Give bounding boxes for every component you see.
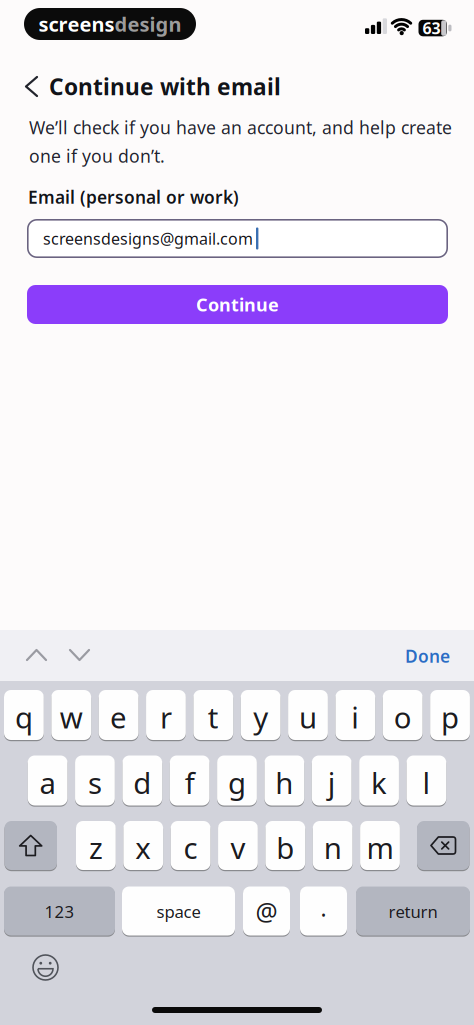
staticText: d bbox=[133, 762, 151, 802]
button[interactable]: s bbox=[75, 755, 115, 807]
button[interactable]: Next field bbox=[70, 650, 89, 660]
staticText: y bbox=[253, 697, 268, 737]
staticText: s bbox=[88, 762, 102, 802]
button[interactable]: d bbox=[122, 755, 162, 807]
button[interactable]: Back bbox=[26, 77, 37, 96]
staticText: screensdesigns@gmail.com bbox=[43, 228, 253, 249]
staticText: f bbox=[185, 762, 195, 802]
staticText: b bbox=[276, 827, 294, 867]
button[interactable]: Continue bbox=[27, 285, 448, 324]
button[interactable]: Emoji bbox=[32, 954, 59, 981]
button[interactable]: i bbox=[335, 690, 375, 741]
staticText: @ bbox=[255, 895, 277, 928]
staticText: one if you don’t. bbox=[29, 144, 165, 168]
button[interactable]: t bbox=[193, 690, 233, 741]
staticText: space bbox=[156, 900, 200, 923]
button[interactable]: 123 bbox=[4, 886, 115, 937]
staticText: n bbox=[324, 827, 342, 867]
staticText: design bbox=[114, 10, 181, 38]
staticText: Continue with email bbox=[49, 71, 281, 102]
button[interactable]: a bbox=[28, 755, 67, 807]
staticText: r bbox=[160, 697, 172, 737]
button[interactable]: Previous field bbox=[27, 650, 46, 660]
button[interactable]: space bbox=[122, 886, 235, 937]
button[interactable]: return bbox=[356, 886, 470, 937]
staticText: Done bbox=[405, 644, 450, 668]
button[interactable]: n bbox=[313, 821, 353, 871]
button[interactable]: k bbox=[359, 755, 399, 807]
staticText: . bbox=[320, 893, 326, 923]
staticText: t bbox=[208, 697, 219, 737]
staticText: w bbox=[60, 697, 83, 737]
button[interactable]: j bbox=[312, 755, 352, 807]
staticText: v bbox=[230, 827, 245, 867]
staticText: Email (personal or work) bbox=[28, 185, 239, 209]
staticText: x bbox=[135, 827, 151, 867]
staticText: screens bbox=[38, 10, 114, 38]
staticText: Continue bbox=[196, 292, 279, 317]
button[interactable]: w bbox=[51, 690, 91, 741]
button[interactable]: o bbox=[383, 690, 423, 741]
staticText: e bbox=[110, 697, 127, 737]
button[interactable]: z bbox=[76, 821, 116, 871]
button[interactable]: h bbox=[264, 755, 304, 807]
staticText: l bbox=[422, 762, 430, 802]
button[interactable]: q bbox=[4, 690, 44, 741]
button[interactable]: Delete bbox=[417, 821, 469, 871]
staticText: c bbox=[184, 827, 198, 867]
button[interactable]: Email, screensdesigns@gmail.com bbox=[27, 219, 448, 258]
button[interactable]: Shift bbox=[4, 821, 57, 871]
button[interactable]: r bbox=[146, 690, 186, 741]
staticText: o bbox=[394, 697, 412, 737]
staticText: p bbox=[441, 697, 459, 737]
staticText: k bbox=[371, 762, 387, 802]
button[interactable]: y bbox=[241, 690, 280, 741]
staticText: 123 bbox=[44, 900, 74, 923]
staticText: 63 bbox=[422, 17, 440, 39]
button[interactable]: p bbox=[430, 690, 470, 741]
staticText: return bbox=[388, 900, 437, 923]
button[interactable]: v bbox=[218, 821, 258, 871]
button[interactable]: @ bbox=[243, 886, 290, 937]
button[interactable]: g bbox=[217, 755, 257, 807]
button[interactable]: Done bbox=[370, 645, 450, 667]
staticText: q bbox=[15, 697, 33, 737]
staticText: g bbox=[228, 762, 246, 802]
button[interactable]: e bbox=[99, 690, 138, 741]
button[interactable]: m bbox=[360, 821, 400, 871]
button[interactable]: f bbox=[170, 755, 210, 807]
button[interactable]: l bbox=[406, 755, 446, 807]
staticText: z bbox=[89, 827, 103, 867]
button[interactable]: c bbox=[171, 821, 210, 871]
staticText: j bbox=[328, 762, 336, 802]
staticText: h bbox=[275, 762, 293, 802]
staticText: We’ll check if you have an account, and … bbox=[29, 115, 452, 139]
staticText: m bbox=[366, 827, 393, 867]
staticText: i bbox=[351, 697, 359, 737]
button[interactable]: x bbox=[123, 821, 163, 871]
staticText: a bbox=[40, 762, 56, 802]
button[interactable]: b bbox=[265, 821, 305, 871]
button[interactable]: . bbox=[300, 886, 347, 937]
staticText: u bbox=[299, 697, 317, 737]
button[interactable]: u bbox=[288, 690, 328, 741]
